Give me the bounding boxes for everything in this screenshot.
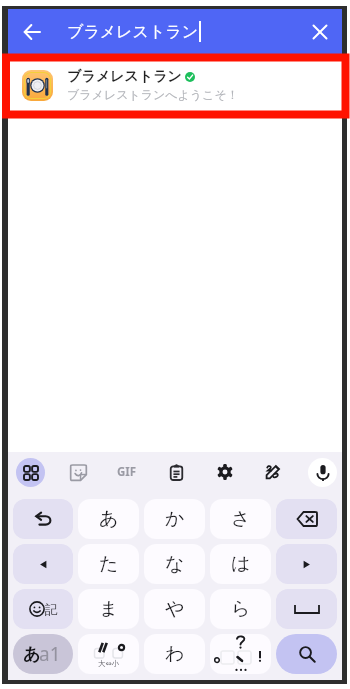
button[interactable]: Backspace — [276, 499, 337, 539]
button[interactable]: ま — [78, 589, 139, 629]
button[interactable]: あ — [78, 499, 139, 539]
staticText: ら — [231, 597, 251, 621]
staticText: か — [165, 507, 185, 531]
button[interactable]: ブラメレストラン — [8, 54, 342, 116]
button[interactable]: Handwriting — [257, 456, 289, 488]
staticText: た — [99, 552, 119, 576]
staticText: な — [165, 552, 185, 576]
button[interactable]: Search — [276, 634, 337, 674]
button[interactable]: Undo — [13, 499, 73, 539]
staticText: ブラメレストラン — [67, 22, 198, 42]
staticText: わ — [165, 642, 185, 666]
button[interactable]: Voice input — [306, 456, 338, 488]
button[interactable]: わ — [144, 634, 205, 674]
button[interactable]: Cursor right — [276, 544, 337, 584]
staticText: や — [165, 597, 185, 621]
button[interactable]: Clear search — [305, 17, 334, 46]
button[interactable]: GIF — [111, 456, 143, 488]
button[interactable]: Back — [17, 17, 46, 46]
staticText: ま — [99, 597, 119, 621]
button[interactable]: や — [144, 589, 205, 629]
staticText: さ — [231, 507, 251, 531]
button[interactable]: Cursor left — [13, 544, 73, 584]
staticText: a1 — [39, 641, 61, 667]
button[interactable]: Settings — [209, 456, 241, 488]
staticText: あ — [23, 644, 41, 665]
staticText: ブラメレストランへようこそ！ — [67, 87, 239, 102]
button[interactable]: Keyboard modes — [14, 456, 46, 488]
button[interactable]: Space — [276, 589, 337, 629]
button[interactable]: な — [144, 544, 205, 584]
staticText: 大⇔小 — [98, 659, 120, 668]
button[interactable]: か — [144, 499, 205, 539]
staticText: ブラメレストラン — [67, 68, 182, 86]
button[interactable]: Clipboard — [160, 456, 192, 488]
staticText: あ — [99, 507, 119, 531]
button[interactable]: た — [78, 544, 139, 584]
staticText: は — [231, 552, 251, 576]
button[interactable]: Input mode — [13, 634, 73, 674]
button[interactable]: Punctuation — [210, 634, 271, 674]
button[interactable]: ら — [210, 589, 271, 629]
button[interactable]: Emoji — [13, 589, 73, 629]
button[interactable]: Stickers — [62, 456, 94, 488]
button[interactable]: Dakuten — [78, 634, 139, 674]
button[interactable]: さ — [210, 499, 271, 539]
staticText: GIF — [117, 464, 137, 480]
staticText: 記 — [45, 601, 58, 617]
button[interactable]: は — [210, 544, 271, 584]
